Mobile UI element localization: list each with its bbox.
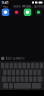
staticText: 9:41 [1,0,8,5]
button[interactable]: Spotify [33,5,44,16]
button[interactable]: Msg [0,5,11,16]
staticText: Add comment [6,57,25,60]
button[interactable]: WhatsApp [22,5,33,16]
staticText: Msg [3,5,8,8]
button[interactable]: TikTok [11,5,22,16]
staticText: Spotify [34,5,43,8]
staticText: TikTok [13,5,20,8]
staticText: WhatsApp [22,5,33,8]
